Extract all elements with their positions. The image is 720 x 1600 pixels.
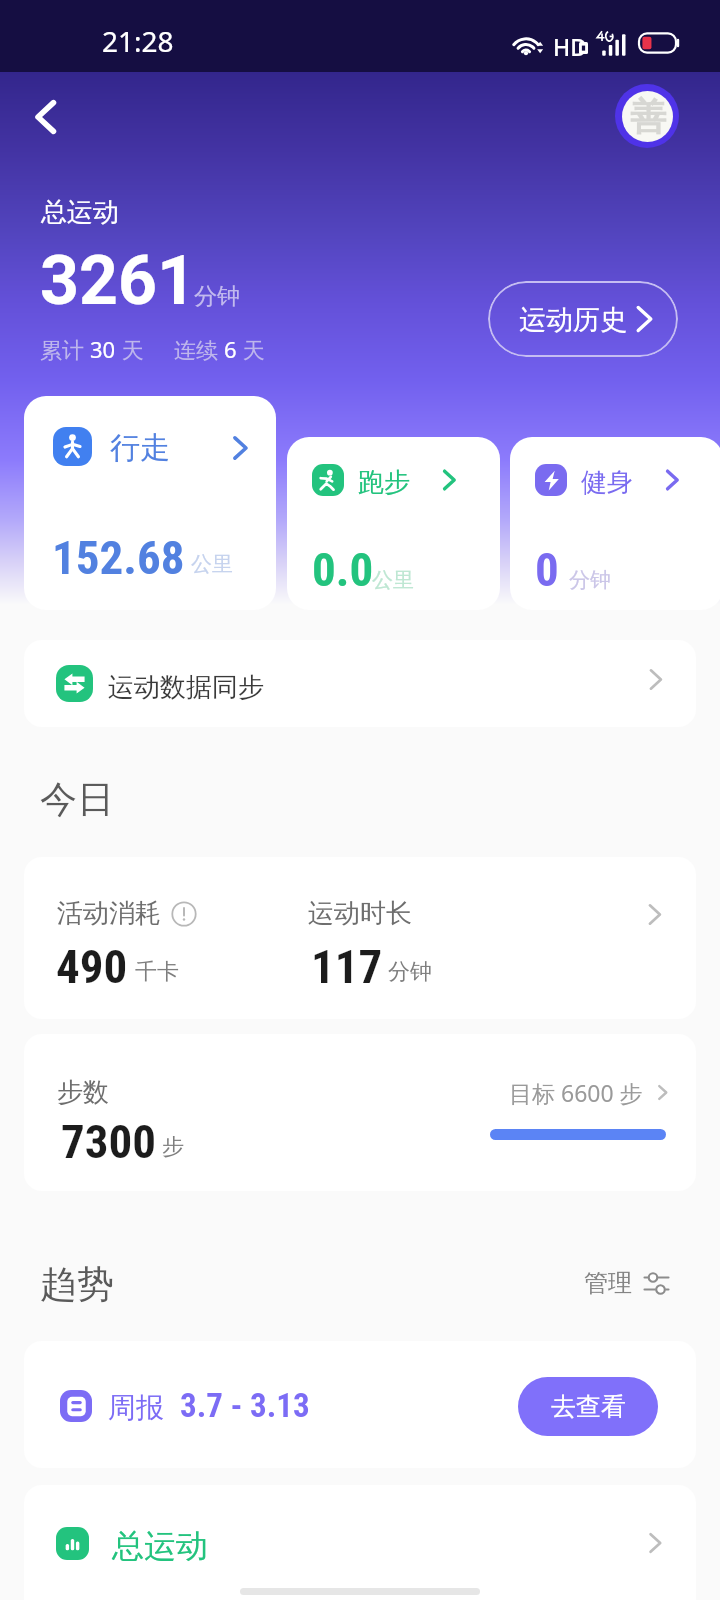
staticText: 6 xyxy=(224,334,237,364)
staticText: 总运动 xyxy=(112,1526,208,1566)
staticText: 行走 xyxy=(110,429,170,467)
staticText: 30 xyxy=(90,334,116,364)
staticText: 活动消耗 xyxy=(57,897,161,930)
button[interactable]: 运动数据同步 xyxy=(24,640,696,727)
button[interactable]: 行走 xyxy=(24,396,276,610)
staticText: 3.7 - 3.13 xyxy=(180,1386,310,1425)
button[interactable]: 管理 xyxy=(584,1268,669,1298)
button[interactable]: 健身 xyxy=(510,437,720,610)
staticText: 公里 xyxy=(191,551,233,577)
staticText: 0.0 xyxy=(312,542,374,597)
button[interactable]: 活动消耗 xyxy=(24,857,696,1019)
staticText: 千卡 xyxy=(135,958,179,986)
staticText: 累计 xyxy=(40,334,90,364)
button[interactable]: Profile xyxy=(615,84,679,148)
staticText: 21:28 xyxy=(102,22,174,60)
staticText: 152.68 xyxy=(52,530,185,585)
staticText: 运动数据同步 xyxy=(108,671,264,704)
staticText: 公里 xyxy=(372,567,414,593)
staticText: 步数 xyxy=(57,1076,109,1109)
staticText: 490 xyxy=(56,939,128,994)
button[interactable]: 跑步 xyxy=(287,437,500,610)
staticText: 今日 xyxy=(40,776,114,823)
staticText: 管理 xyxy=(584,1268,632,1298)
staticText: 连续 xyxy=(174,334,224,364)
button[interactable]: 总运动 xyxy=(24,1485,696,1600)
staticText: 周报 xyxy=(108,1390,164,1425)
staticText: 天 xyxy=(237,334,265,364)
staticText: 分钟 xyxy=(194,282,240,311)
staticText: 总运动 xyxy=(41,196,119,229)
staticText: 运动历史 xyxy=(519,303,627,337)
staticText: 去查看 xyxy=(551,1391,626,1422)
button[interactable]: Back xyxy=(18,88,76,146)
staticText: 分钟 xyxy=(569,567,611,593)
staticText: 运动时长 xyxy=(308,897,412,930)
staticText: 117 xyxy=(311,939,383,994)
button[interactable]: 步数 xyxy=(24,1034,696,1191)
staticText: 0 xyxy=(535,542,559,597)
staticText: 健身 xyxy=(581,466,633,499)
staticText: 目标 6600 步 xyxy=(509,1077,643,1108)
staticText: 7300 xyxy=(61,1114,157,1169)
staticText: 跑步 xyxy=(358,466,410,499)
staticText: 趋势 xyxy=(40,1261,114,1308)
staticText: HD xyxy=(553,31,588,62)
staticText: 3261 xyxy=(40,241,197,321)
button[interactable]: 去查看 xyxy=(518,1377,658,1436)
button[interactable]: 运动历史 xyxy=(488,281,678,357)
staticText: 分钟 xyxy=(388,958,432,986)
staticText: 善 xyxy=(630,94,666,139)
staticText: 天 xyxy=(116,334,144,364)
staticText: 步 xyxy=(162,1133,184,1161)
